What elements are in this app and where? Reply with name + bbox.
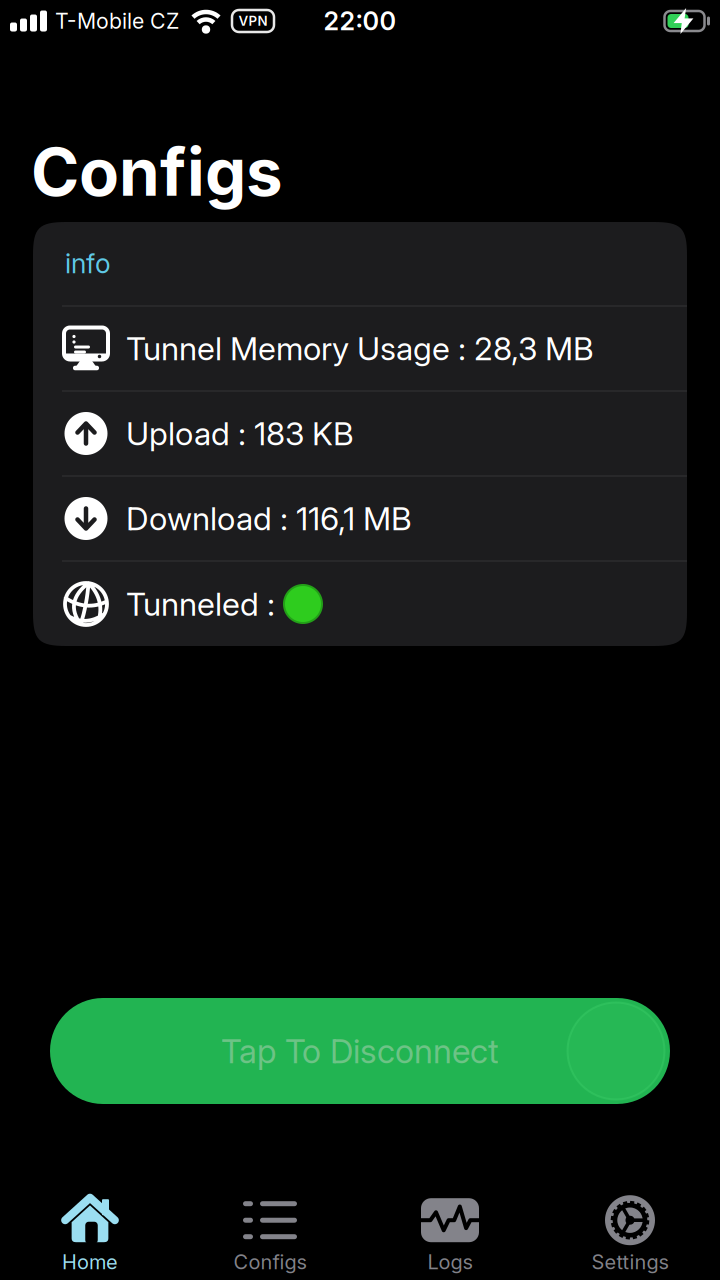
staticText: Configs — [31, 133, 283, 211]
button[interactable]: Settings — [540, 1190, 720, 1278]
staticText: Configs — [233, 1250, 306, 1274]
staticText: 22:00 — [323, 6, 396, 36]
staticText: Home — [62, 1250, 118, 1274]
staticText: info — [65, 248, 111, 279]
button[interactable]: Logs — [360, 1190, 540, 1278]
staticText: Upload : 183 KB — [126, 415, 354, 452]
staticText: Download : 116,1 MB — [126, 500, 412, 537]
staticText: VPN — [238, 13, 267, 29]
button[interactable]: Home — [0, 1190, 180, 1278]
button[interactable]: Configs — [180, 1190, 360, 1278]
staticText: T-Mobile CZ — [55, 8, 179, 34]
staticText: Tunnel Memory Usage : 28,3 MB — [126, 330, 594, 367]
staticText: Tunneled : — [126, 585, 283, 623]
staticText: Tap To Disconnect — [221, 1031, 499, 1071]
button[interactable]: Tap To Disconnect — [50, 998, 670, 1104]
staticText: Logs — [427, 1250, 472, 1274]
staticText: Settings — [591, 1250, 668, 1274]
